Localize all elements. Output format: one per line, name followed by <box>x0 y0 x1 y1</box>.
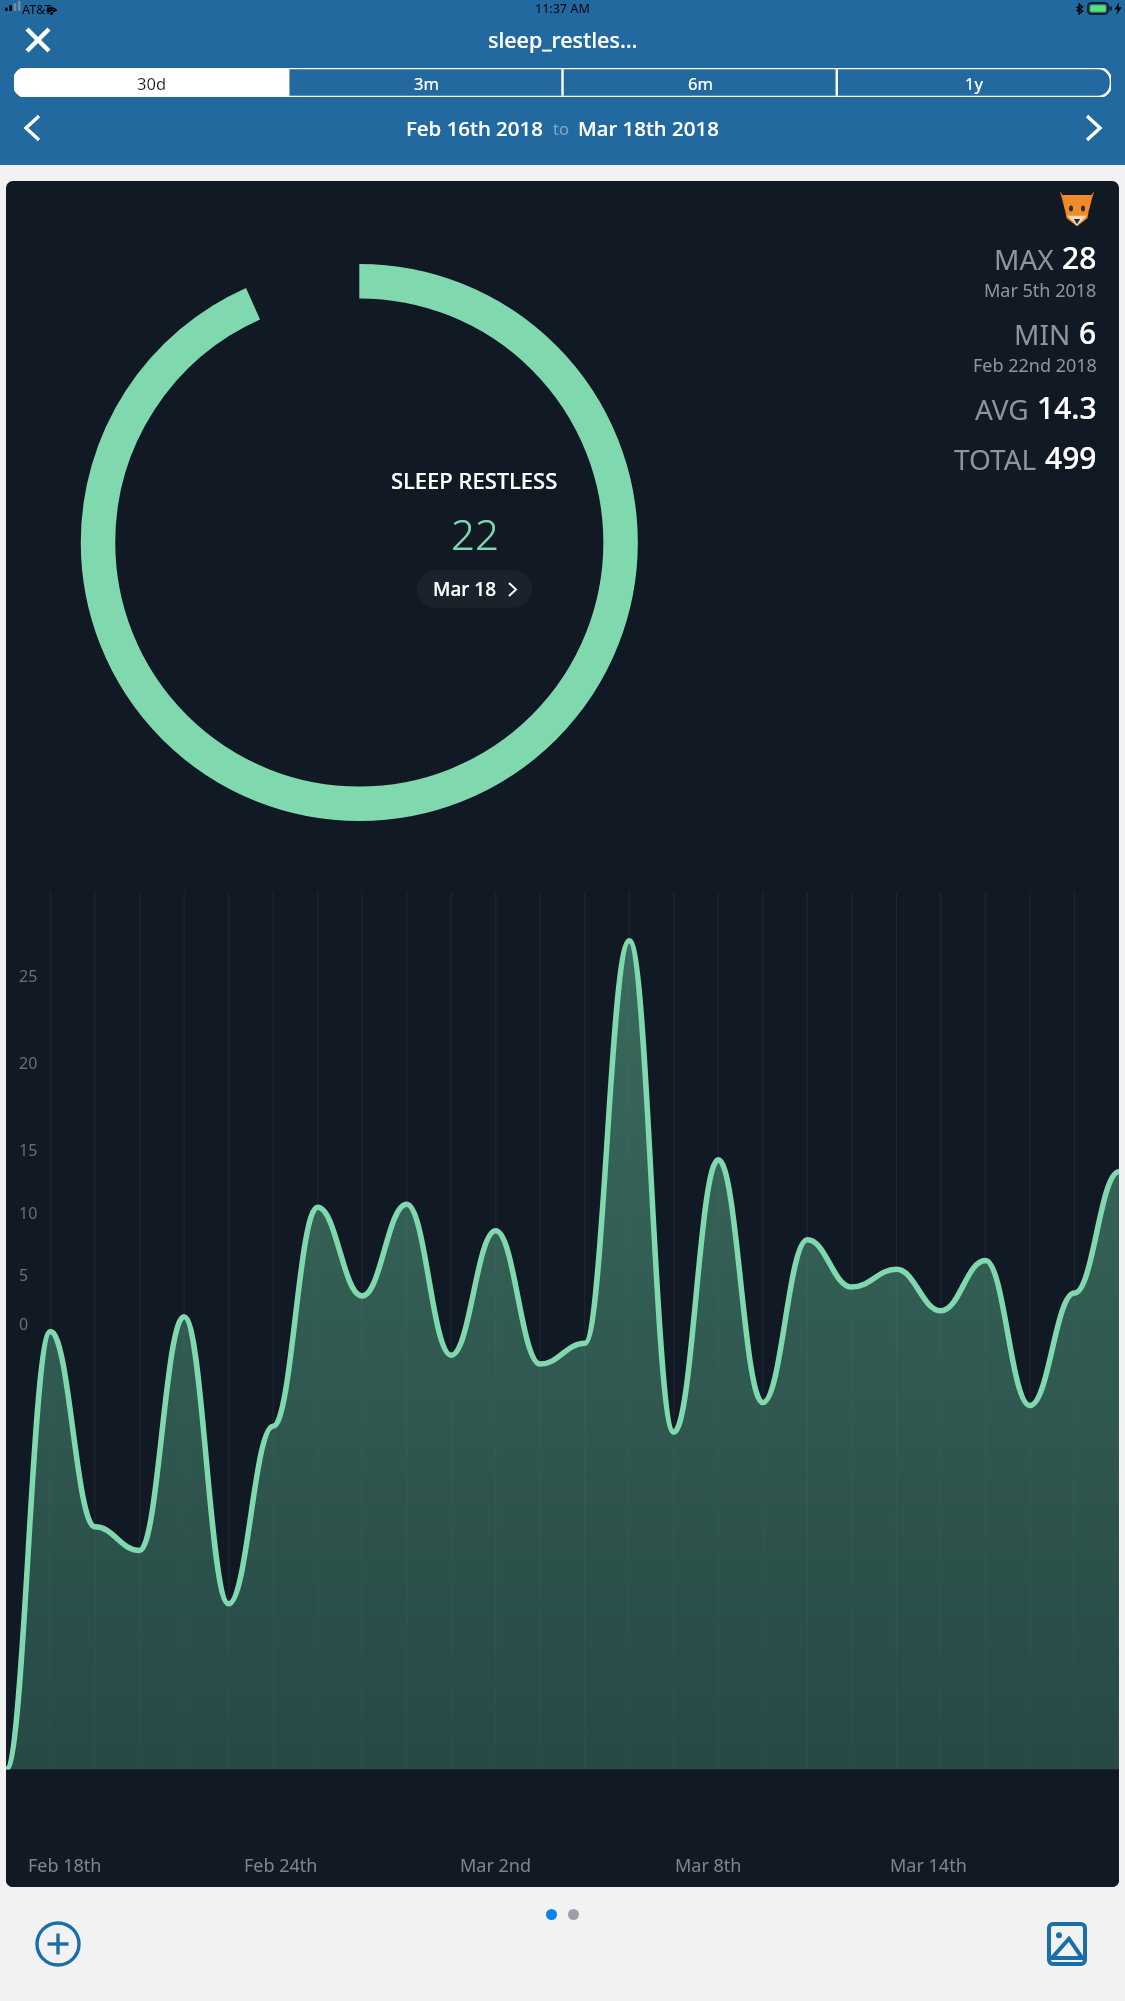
staticText: AVG <box>975 390 1029 428</box>
staticText: 6 <box>1079 312 1097 353</box>
button[interactable]: Close <box>20 22 56 58</box>
staticText: Mar 14th <box>890 1853 967 1878</box>
staticText: Mar 18 <box>433 576 497 602</box>
button[interactable]: Image <box>1041 1918 1093 1970</box>
staticText: Mar 8th <box>675 1853 742 1878</box>
staticText: Feb 18th <box>28 1853 102 1878</box>
staticText: Feb 22nd 2018 <box>973 353 1097 378</box>
staticText: 1y <box>965 72 983 94</box>
staticText: 14.3 <box>1037 387 1097 428</box>
staticText: Feb 24th <box>244 1853 318 1878</box>
button[interactable]: 30d <box>14 68 289 97</box>
staticText: 499 <box>1045 437 1097 478</box>
button[interactable]: 6m <box>563 68 837 97</box>
staticText: 25 <box>19 965 38 987</box>
button[interactable]: SLEEP RESTLESS <box>6 181 1119 1887</box>
staticText: AT&T <box>22 1 52 18</box>
staticText: to <box>553 117 569 139</box>
staticText: MIN <box>1014 315 1071 353</box>
staticText: sleep_restles… <box>488 25 638 54</box>
staticText: 3m <box>414 72 439 94</box>
staticText: 10 <box>19 1202 38 1224</box>
staticText: SLEEP RESTLESS <box>391 465 558 495</box>
button[interactable]: Next <box>1071 106 1115 150</box>
staticText: Mar 2nd <box>460 1853 532 1878</box>
button[interactable]: Previous <box>10 106 54 150</box>
staticText: TOTAL <box>954 440 1037 478</box>
button[interactable]: Add <box>32 1918 84 1970</box>
staticText: 20 <box>19 1052 38 1074</box>
staticText: 0 <box>19 1313 29 1335</box>
staticText: 30d <box>137 72 167 94</box>
staticText: Feb 16th 2018 <box>406 114 544 142</box>
staticText: MAX <box>994 240 1054 278</box>
staticText: 28 <box>1062 237 1097 278</box>
staticText: 6m <box>688 72 713 94</box>
staticText: 22 <box>451 505 499 562</box>
staticText: 15 <box>19 1139 38 1161</box>
button[interactable]: 1y <box>837 68 1111 97</box>
staticText: 5 <box>19 1264 29 1286</box>
staticText: Mar 5th 2018 <box>984 278 1097 303</box>
button[interactable]: 3m <box>289 68 563 97</box>
staticText: Mar 18th 2018 <box>578 114 719 142</box>
staticText: 11:37 AM <box>535 0 590 17</box>
button[interactable]: Mar 18 <box>433 576 516 602</box>
